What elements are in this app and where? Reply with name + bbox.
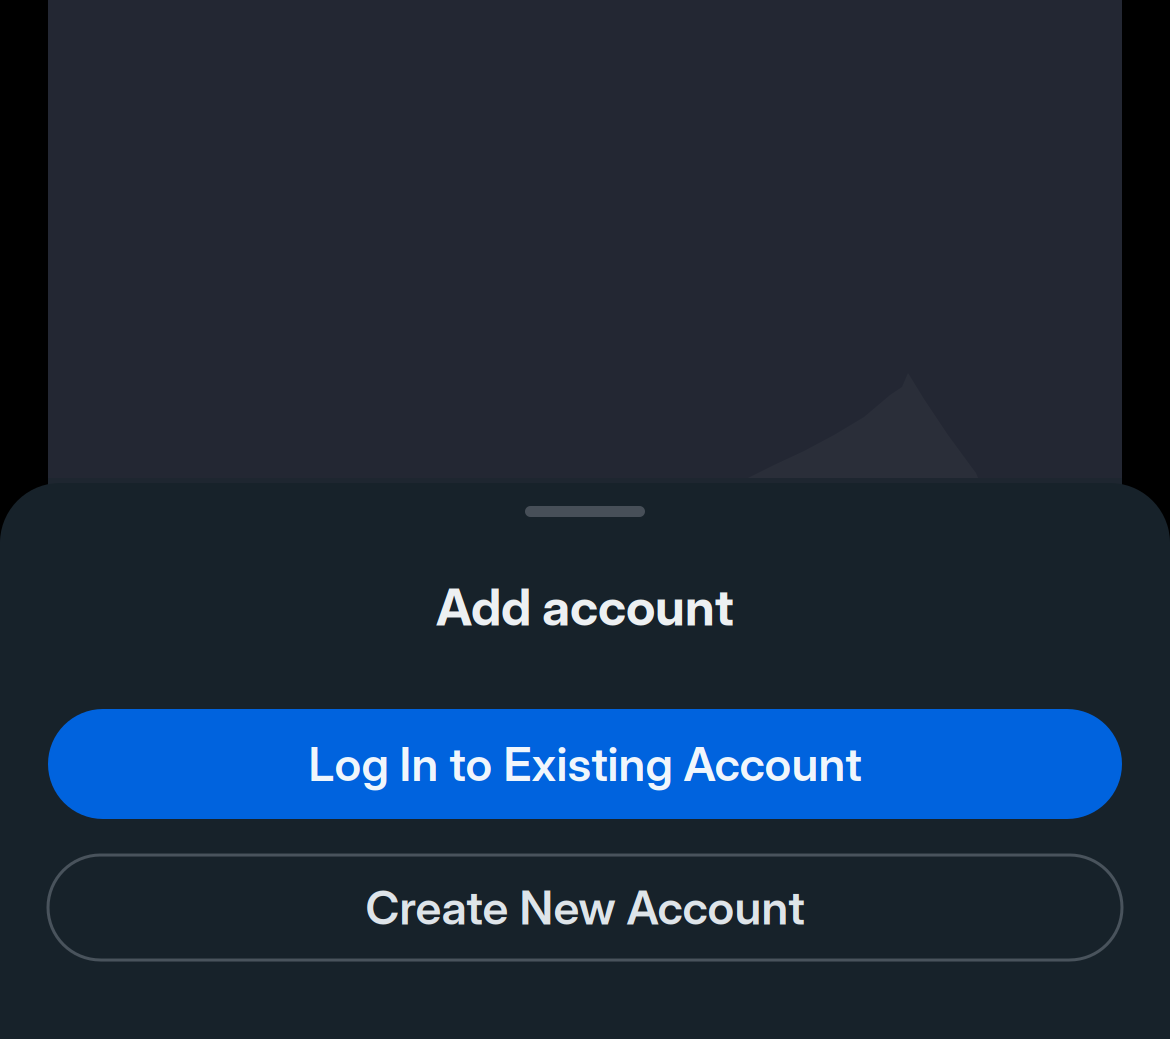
staticText: Create New Account <box>365 879 804 936</box>
staticText: Add account <box>436 576 734 638</box>
button[interactable]: Log In to Existing Account <box>48 709 1122 819</box>
staticText: Log In to Existing Account <box>308 736 861 792</box>
button[interactable]: Create New Account <box>48 855 1122 960</box>
